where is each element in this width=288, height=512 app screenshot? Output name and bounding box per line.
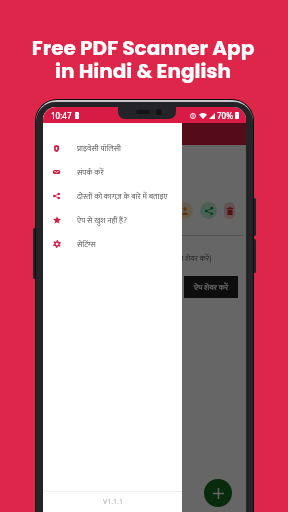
staticText: Free PDF Scanner App in Hindi & English: [0, 34, 287, 85]
staticText: V1.1.1: [103, 497, 123, 507]
button[interactable]: [224, 202, 235, 219]
button[interactable]: दोस्तों को कागज़ के बारे में बताइए: [43, 184, 182, 208]
staticText: ऐप शेयर करें: [194, 281, 229, 294]
staticText: संपर्क करें: [77, 166, 104, 179]
button[interactable]: सेटिंग्स: [43, 232, 182, 256]
button[interactable]: संपर्क करें: [43, 160, 182, 184]
button[interactable]: Add: [204, 479, 232, 507]
staticText: इस ऐप को अपने दोस्तों के साथ शेयर करें|: [100, 252, 212, 265]
button[interactable]: [200, 202, 217, 219]
staticText: सेटिंग्स: [77, 238, 96, 251]
staticText: 10:47: [51, 110, 72, 121]
staticText: 70%: [217, 110, 233, 121]
button[interactable]: [104, 202, 121, 219]
button[interactable]: प्राइवेसी पॉलिसी: [43, 136, 182, 160]
button[interactable]: [56, 202, 73, 219]
staticText: दोस्तों को कागज़ के बारे में बताइए: [77, 190, 168, 203]
staticText: ऐप से खुश नहीं हैं?: [77, 214, 127, 227]
staticText: प्राइवेसी पॉलिसी: [77, 142, 121, 155]
button[interactable]: ऐप से खुश नहीं हैं?: [43, 208, 182, 232]
button[interactable]: [176, 202, 193, 219]
button[interactable]: ऐप शेयर करें: [184, 276, 238, 298]
button[interactable]: [80, 202, 97, 219]
